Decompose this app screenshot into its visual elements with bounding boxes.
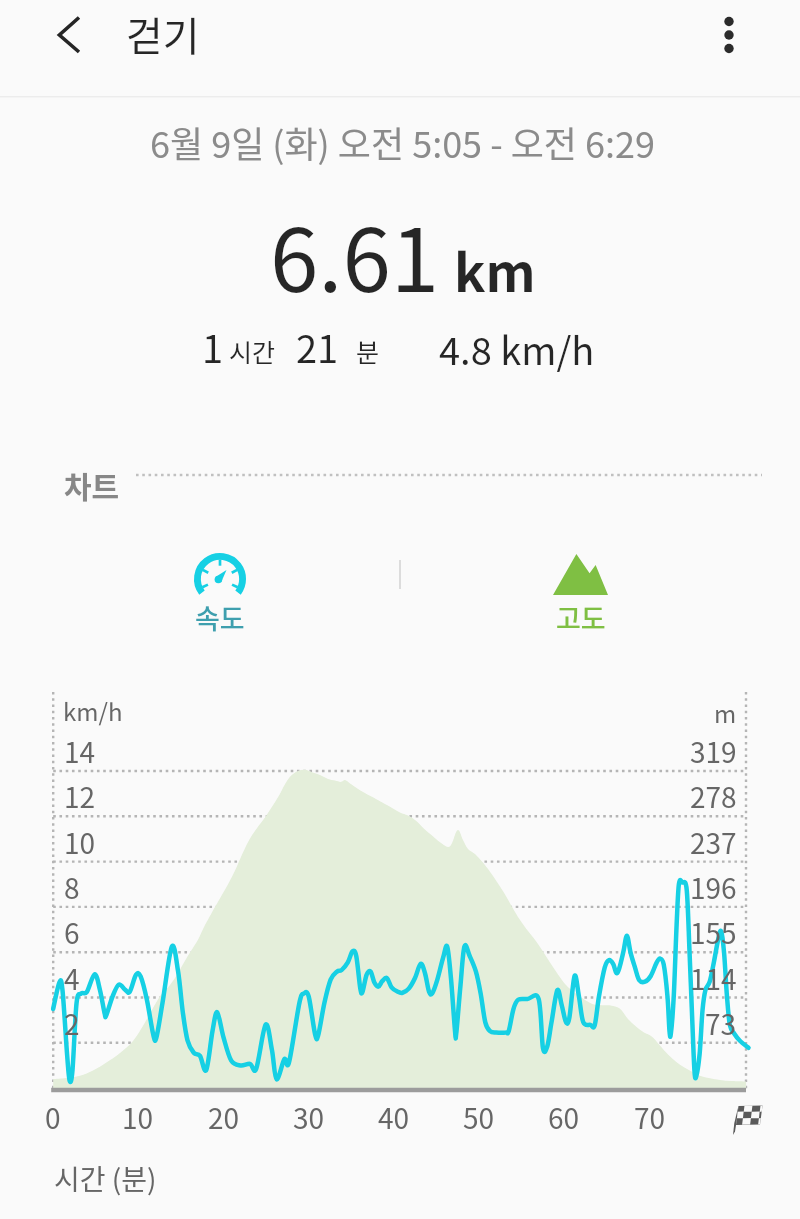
button[interactable]: More options [697, 4, 759, 66]
staticText: 속도 [195, 598, 245, 637]
staticText: 319 [690, 731, 737, 772]
staticText: 12 [64, 776, 96, 817]
staticText: 4 [64, 958, 80, 999]
staticText: 14 [64, 731, 96, 772]
staticText: 차트 [64, 463, 120, 506]
staticText: 70 [634, 1097, 666, 1138]
button[interactable]: 속도 [160, 553, 280, 648]
button[interactable]: Back [29, 5, 89, 65]
staticText: 6 [64, 912, 80, 953]
staticText: 114 [690, 958, 737, 999]
staticText: 1 [202, 319, 224, 374]
staticText: 걷기 [126, 5, 200, 63]
staticText: 73 [705, 1003, 737, 1044]
staticText: 278 [690, 776, 737, 817]
staticText: 6.61 [270, 191, 440, 317]
staticText: 237 [690, 822, 737, 863]
staticText: 2 [64, 1003, 80, 1044]
staticText: 시간 [229, 333, 276, 369]
staticText: 4.8 km/h [439, 321, 595, 376]
staticText: 6월 9일 (화) 오전 5:05 - 오전 6:29 [150, 116, 655, 168]
staticText: km [454, 232, 536, 307]
staticText: m [714, 695, 737, 730]
staticText: 21 [296, 319, 339, 374]
staticText: 155 [690, 912, 737, 953]
staticText: 시간 (분) [54, 1158, 157, 1199]
staticText: 50 [463, 1097, 495, 1138]
staticText: km/h [63, 693, 123, 728]
staticText: 40 [378, 1097, 410, 1138]
staticText: 10 [64, 822, 96, 863]
staticText: 60 [548, 1097, 580, 1138]
staticText: 10 [122, 1097, 154, 1138]
staticText: 분 [356, 333, 380, 369]
staticText: 20 [208, 1097, 240, 1138]
button[interactable]: 고도 [520, 554, 640, 649]
staticText: 0 [45, 1097, 61, 1138]
staticText: 고도 [556, 598, 606, 637]
staticText: 8 [64, 867, 80, 908]
staticText: 30 [293, 1097, 325, 1138]
staticText: 196 [690, 867, 737, 908]
